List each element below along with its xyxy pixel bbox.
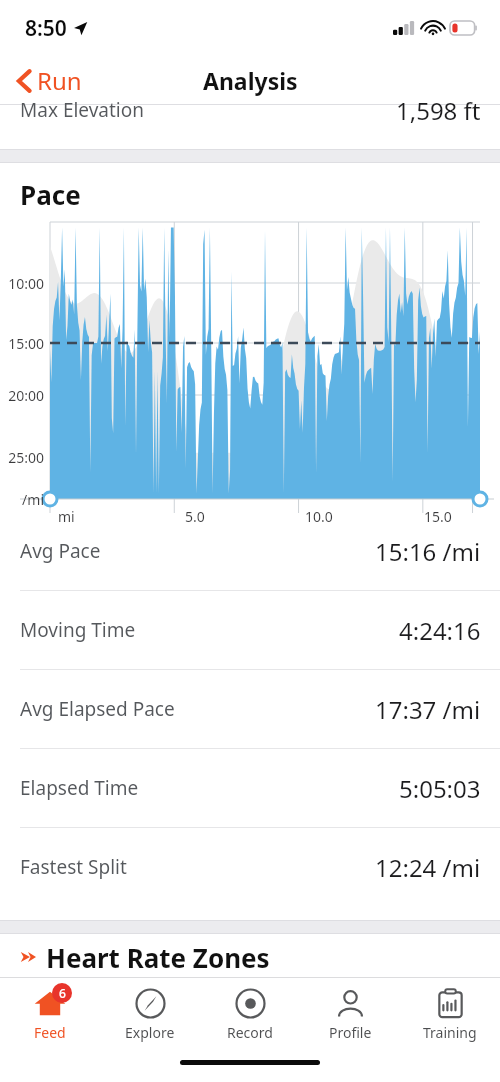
staticText: Explore — [125, 1023, 175, 1042]
button[interactable]: Avg Pace — [0, 512, 500, 590]
button[interactable]: Avg Elapsed Pace — [0, 669, 500, 748]
staticText: 6 — [59, 985, 66, 1001]
staticText: mi — [58, 507, 75, 526]
staticText: 17:37 /mi — [375, 693, 481, 726]
button[interactable]: Run — [12, 60, 86, 101]
staticText: Profile — [329, 1023, 372, 1042]
staticText: 1,598 ft — [396, 94, 481, 127]
staticText: Elapsed Time — [20, 775, 139, 801]
staticText: Heart Rate Zones — [46, 940, 270, 975]
staticText: 12:24 /mi — [375, 851, 481, 884]
staticText: Avg Elapsed Pace — [20, 696, 175, 722]
button[interactable]: Moving Time — [0, 590, 500, 669]
button[interactable]: Explore — [100, 978, 200, 1048]
staticText: 25:00 — [6, 448, 44, 467]
staticText: Record — [227, 1023, 273, 1042]
staticText: Max Elevation — [20, 97, 144, 123]
button[interactable]: Profile — [300, 978, 400, 1048]
button[interactable]: Heart Rate Zones — [0, 934, 500, 980]
staticText: 10.0 — [305, 507, 333, 526]
staticText: 5:05:03 — [399, 772, 481, 805]
staticText: 5.0 — [185, 507, 205, 526]
button[interactable]: Feed — [0, 978, 100, 1048]
staticText: Moving Time — [20, 617, 136, 643]
button[interactable]: Record — [200, 978, 300, 1048]
staticText: 15.0 — [424, 507, 452, 526]
staticText: Training — [423, 1023, 477, 1042]
staticText: 8:50 — [25, 14, 67, 43]
staticText: 15:00 — [6, 334, 44, 353]
staticText: Fastest Split — [20, 854, 127, 880]
staticText: Analysis — [203, 65, 298, 96]
button[interactable]: Training — [400, 978, 500, 1048]
staticText: Run — [37, 64, 82, 97]
button[interactable]: Fastest Split — [0, 827, 500, 906]
staticText: 4:24:16 — [399, 614, 481, 647]
staticText: 10:00 — [6, 274, 44, 293]
staticText: Pace — [20, 177, 81, 212]
button[interactable]: Max Elevation — [0, 105, 500, 149]
staticText: 15:16 /mi — [375, 535, 481, 568]
button[interactable]: Elapsed Time — [0, 748, 500, 827]
staticText: /mi — [6, 490, 44, 509]
staticText: Feed — [34, 1023, 66, 1042]
staticText: 20:00 — [6, 386, 44, 405]
staticText: Avg Pace — [20, 538, 101, 564]
